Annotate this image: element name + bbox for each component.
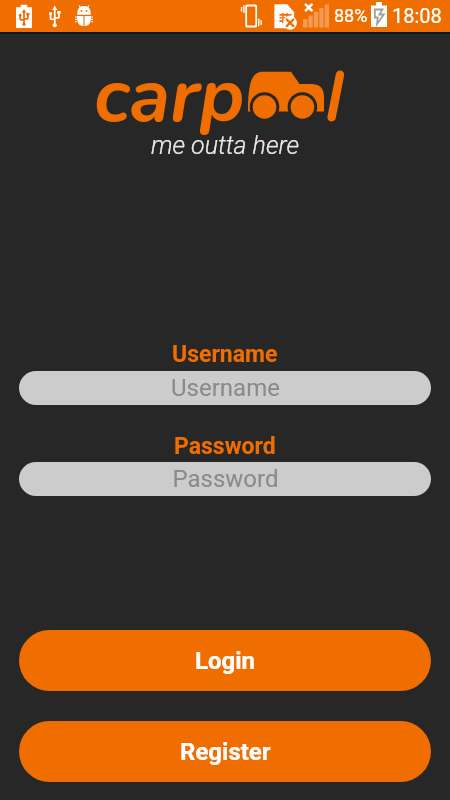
staticText: Login [195,647,256,675]
button[interactable]: Username [19,371,431,405]
staticText: Register [180,738,271,766]
other: USB storage connected [16,4,32,28]
staticText: Username [172,341,278,368]
staticText: Password [174,433,276,460]
staticText: 18:08 [392,4,442,27]
other: Mobile signal [303,3,329,28]
staticText: carp [94,45,245,147]
other: USB debugging connected [48,5,61,28]
staticText: Username [171,374,280,402]
other: Battery charging [371,2,387,27]
staticText: 88% [334,5,368,26]
other: No SIM card [273,3,296,29]
other: Developer options [75,5,93,26]
staticText: me outta here [151,131,299,160]
button[interactable]: Login [19,630,431,691]
other: Vibrate mode [240,4,268,28]
staticText: Password [172,465,279,493]
button[interactable]: Register [19,721,431,782]
button[interactable]: Password [19,462,431,496]
